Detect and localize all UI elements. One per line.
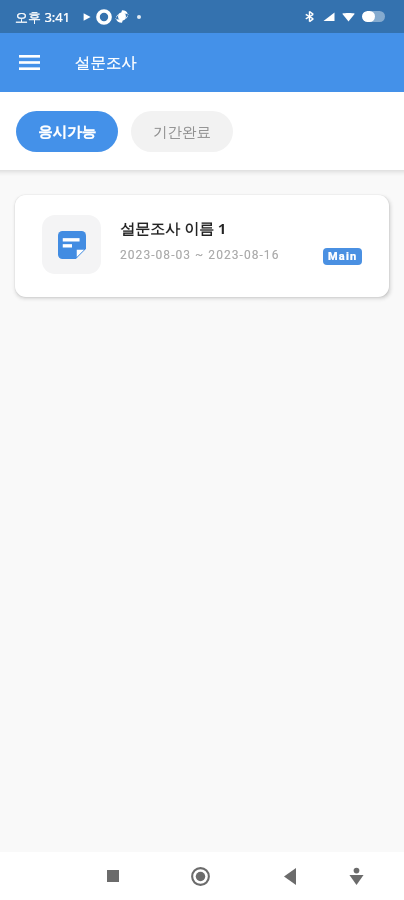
- button[interactable]: Hide keyboard: [336, 856, 376, 896]
- button[interactable]: Menu: [0, 33, 58, 92]
- staticText: 설문조사 이름 1: [120, 218, 227, 238]
- button[interactable]: 기간완료: [131, 111, 233, 152]
- button[interactable]: Recents: [93, 856, 133, 896]
- staticText: 응시가능: [38, 123, 96, 141]
- staticText: 2023-08-03 ~ 2023-08-16: [120, 248, 280, 262]
- staticText: 기간완료: [153, 123, 211, 141]
- staticText: Main: [328, 250, 358, 263]
- staticText: 설문조사: [75, 53, 137, 73]
- button[interactable]: 응시가능: [16, 111, 118, 152]
- button[interactable]: Home: [180, 856, 220, 896]
- button[interactable]: Back: [270, 856, 310, 896]
- staticText: 오후 3:41: [15, 8, 71, 26]
- button[interactable]: 설문조사 이름 1: [15, 195, 389, 297]
